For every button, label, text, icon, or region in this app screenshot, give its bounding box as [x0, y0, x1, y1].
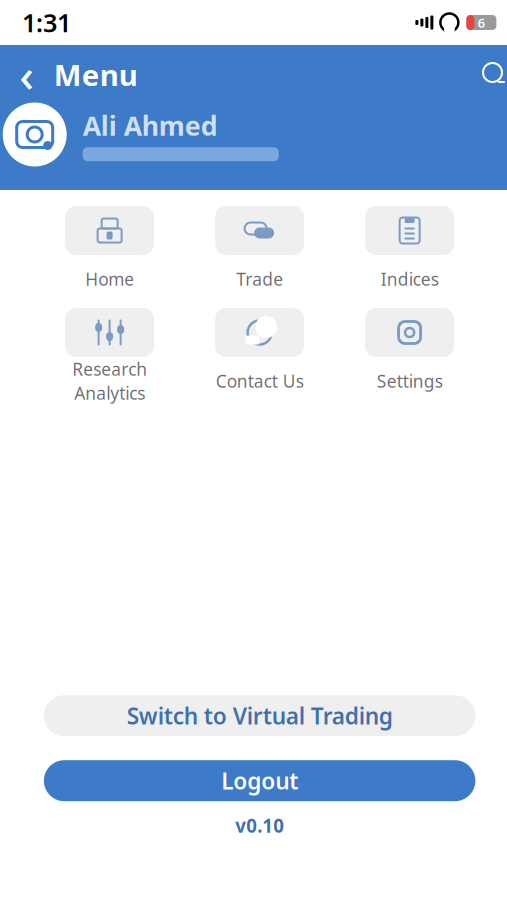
staticText: 1:31 — [22, 6, 71, 39]
button[interactable]: Research — [35, 308, 185, 398]
staticText: Indices — [381, 267, 439, 290]
staticText: Logout — [221, 766, 298, 796]
button[interactable]: Trade — [185, 206, 335, 296]
staticText: Menu — [54, 55, 138, 94]
staticText: Contact Us — [216, 369, 304, 392]
staticText: ‹ — [19, 44, 34, 105]
button[interactable]: Logout — [44, 760, 475, 801]
staticText: 6 — [477, 14, 485, 31]
button[interactable]: Change profile photo — [3, 102, 67, 166]
button[interactable]: Search — [479, 59, 507, 89]
staticText: Ali Ahmed — [83, 108, 218, 143]
staticText: Home — [85, 267, 134, 290]
button[interactable]: Back — [10, 56, 44, 92]
button[interactable]: Home — [35, 206, 185, 296]
staticText: Research — [72, 357, 147, 380]
staticText: Trade — [236, 267, 283, 290]
button[interactable]: Settings — [335, 308, 485, 398]
staticText: Settings — [377, 369, 443, 392]
staticText: v0.10 — [235, 813, 284, 838]
button[interactable]: Indices — [335, 206, 485, 296]
button[interactable]: Switch to Virtual Trading — [44, 695, 475, 736]
staticText: Analytics — [74, 381, 145, 404]
button[interactable]: Contact Us — [185, 308, 335, 398]
staticText: Switch to Virtual Trading — [127, 701, 393, 731]
button[interactable]: Menu — [44, 55, 138, 94]
